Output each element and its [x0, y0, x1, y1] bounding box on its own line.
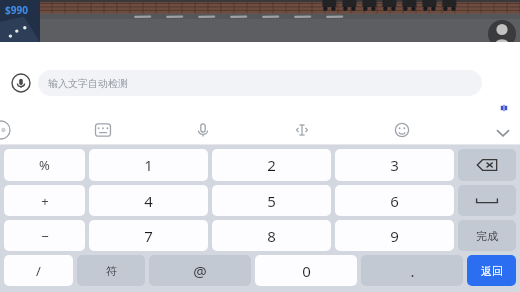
staticText: 7 — [144, 226, 153, 246]
button[interactable]: 输入文字自动检测 — [38, 70, 482, 96]
button[interactable]: 9 — [335, 220, 454, 251]
staticText: 9 — [390, 226, 399, 246]
button[interactable]: @ — [149, 255, 251, 286]
button[interactable]: 3 — [335, 149, 454, 181]
button[interactable]: 符 — [77, 255, 145, 286]
staticText: 8 — [267, 226, 276, 246]
button[interactable]: 5 — [212, 185, 331, 216]
button[interactable]: Keyboard — [92, 119, 114, 141]
staticText: $990 — [5, 3, 28, 17]
staticText: 输入文字自动检测 — [48, 77, 128, 90]
staticText: % — [39, 156, 50, 174]
staticText: 5 — [267, 191, 276, 211]
button[interactable]: Voice — [192, 119, 214, 141]
button[interactable]: Move cursor — [291, 119, 313, 141]
staticText: + — [41, 192, 49, 210]
button[interactable]: Hide keyboard — [492, 122, 514, 144]
button[interactable]: 7 — [89, 220, 208, 251]
staticText: 2 — [267, 155, 276, 175]
button[interactable]: Profile — [488, 20, 516, 48]
staticText: 1 — [144, 155, 153, 175]
staticText: 完成 — [476, 229, 498, 243]
staticText: 符 — [106, 264, 117, 278]
button[interactable]: 完成 — [458, 220, 516, 251]
button[interactable]: 2 — [212, 149, 331, 181]
staticText: 0 — [302, 261, 311, 281]
staticText: 3 — [390, 155, 399, 175]
button[interactable]: 1 — [89, 149, 208, 181]
button[interactable]: Emoji — [391, 119, 413, 141]
staticText: / — [36, 262, 41, 280]
button[interactable]: Delete — [458, 149, 516, 181]
button[interactable]: + — [4, 185, 85, 216]
staticText: @ — [193, 261, 207, 281]
button[interactable]: . — [361, 255, 463, 286]
button[interactable]: Language — [0, 120, 11, 140]
button[interactable]: / — [4, 255, 73, 286]
button[interactable]: % — [4, 149, 85, 181]
button[interactable]: − — [4, 220, 85, 251]
staticText: 返回 — [481, 264, 503, 278]
staticText: 4 — [144, 191, 153, 211]
button[interactable]: 返回 — [467, 255, 516, 286]
button[interactable]: 0 — [255, 255, 357, 286]
button[interactable]: 8 — [212, 220, 331, 251]
staticText: . — [410, 261, 415, 281]
button[interactable]: 4 — [89, 185, 208, 216]
button[interactable]: Voice input — [11, 73, 31, 93]
staticText: − — [41, 227, 49, 245]
staticText: 6 — [390, 191, 399, 211]
button[interactable]: Space — [458, 185, 516, 216]
button[interactable]: 6 — [335, 185, 454, 216]
